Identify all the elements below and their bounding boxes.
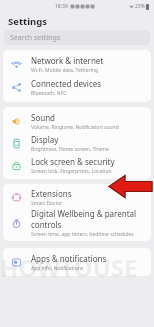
button[interactable]: Apps & notifications [3, 251, 151, 273]
button[interactable]: Digital Wellbeing & parental [3, 208, 151, 238]
button[interactable]: Sound [3, 110, 151, 132]
button[interactable]: Connected devices [3, 76, 151, 99]
staticText: controls [31, 219, 62, 230]
button[interactable]: Extensions [3, 187, 151, 208]
staticText: Settings [8, 15, 47, 28]
staticText: Wi-Fi, Mobile data, Tethering [31, 67, 99, 74]
staticText: Screen time, app timers, bedtime schedul… [31, 231, 134, 238]
staticText: Volume, Ringtone, Notification sound [31, 124, 119, 131]
staticText: Bluetooth, NFC [31, 90, 67, 97]
staticText: Apps & notifications [31, 253, 107, 264]
button[interactable]: Lock screen & security [3, 154, 151, 176]
button[interactable]: Network & internet [3, 53, 151, 76]
staticText: Lock screen & security [31, 156, 115, 167]
staticText: App info, Notifications [31, 265, 84, 272]
other: Pointer arrow [108, 174, 153, 199]
staticText: Extensions [31, 188, 72, 199]
staticText: 18:39 [55, 3, 68, 10]
staticText: Screen lock, Fingerprints, Location [31, 168, 112, 175]
button[interactable]: Search settings [4, 30, 150, 45]
staticText: Network & internet [31, 55, 104, 66]
staticText: Display [31, 134, 59, 145]
staticText: Search settings [10, 33, 61, 43]
staticText: Digital Wellbeing & parental [31, 208, 137, 219]
staticText: Connected devices [31, 78, 102, 89]
staticText: Smart Doctor [31, 200, 63, 207]
staticText: 23% [135, 3, 145, 10]
staticText: HOWTOUSE SET [0, 251, 154, 291]
button[interactable]: Display [3, 132, 151, 154]
staticText: Sound [31, 112, 56, 123]
staticText: Brightness, Home screen, Theme [31, 146, 109, 153]
